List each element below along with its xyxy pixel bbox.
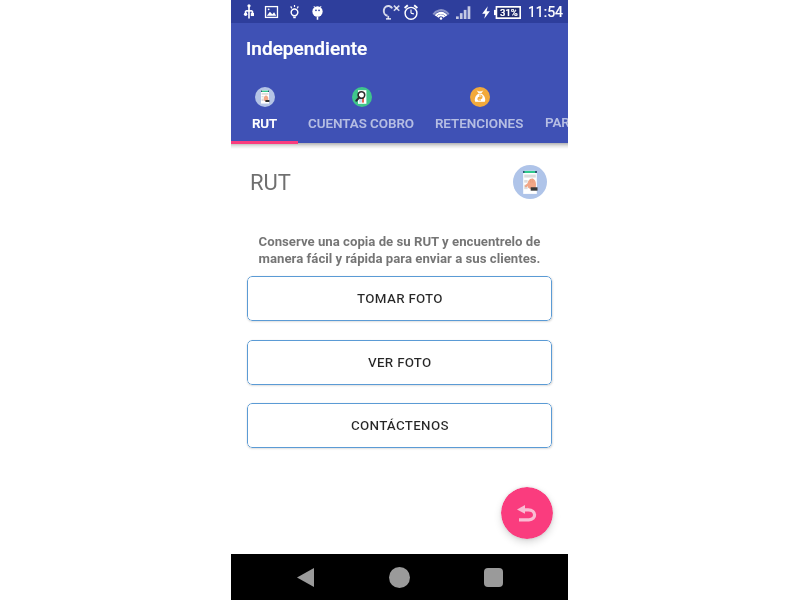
button[interactable]: CUENTAS COBRO [298, 79, 424, 143]
button[interactable]: RUT [231, 79, 298, 143]
staticText: TOMAR FOTO [357, 291, 443, 307]
staticText: Independiente [246, 37, 368, 59]
button[interactable]: RETENCIONES [424, 79, 534, 143]
button[interactable]: Home [373, 554, 425, 600]
staticText: RETENCIONES [435, 116, 524, 132]
button[interactable]: Back [279, 554, 331, 600]
staticText: CUENTAS COBRO [308, 116, 415, 132]
button[interactable]: CONTÁCTENOS [247, 403, 552, 448]
button[interactable]: VER FOTO [247, 340, 552, 385]
staticText: VER FOTO [368, 355, 432, 371]
button[interactable]: TOMAR FOTO [247, 276, 552, 321]
staticText: Conserve una copia de su RUT y encuentre… [231, 234, 568, 266]
staticText: RUT [250, 170, 291, 196]
button[interactable]: Recents [467, 554, 519, 600]
staticText: 11:54 [528, 4, 563, 20]
staticText: 31% [500, 7, 518, 18]
button[interactable]: PARAFISCALES [534, 79, 567, 143]
staticText: RUT [252, 116, 278, 132]
staticText: PARAFISCALES [545, 115, 568, 131]
button[interactable]: Undo [501, 487, 553, 539]
staticText: CONTÁCTENOS [351, 418, 449, 434]
